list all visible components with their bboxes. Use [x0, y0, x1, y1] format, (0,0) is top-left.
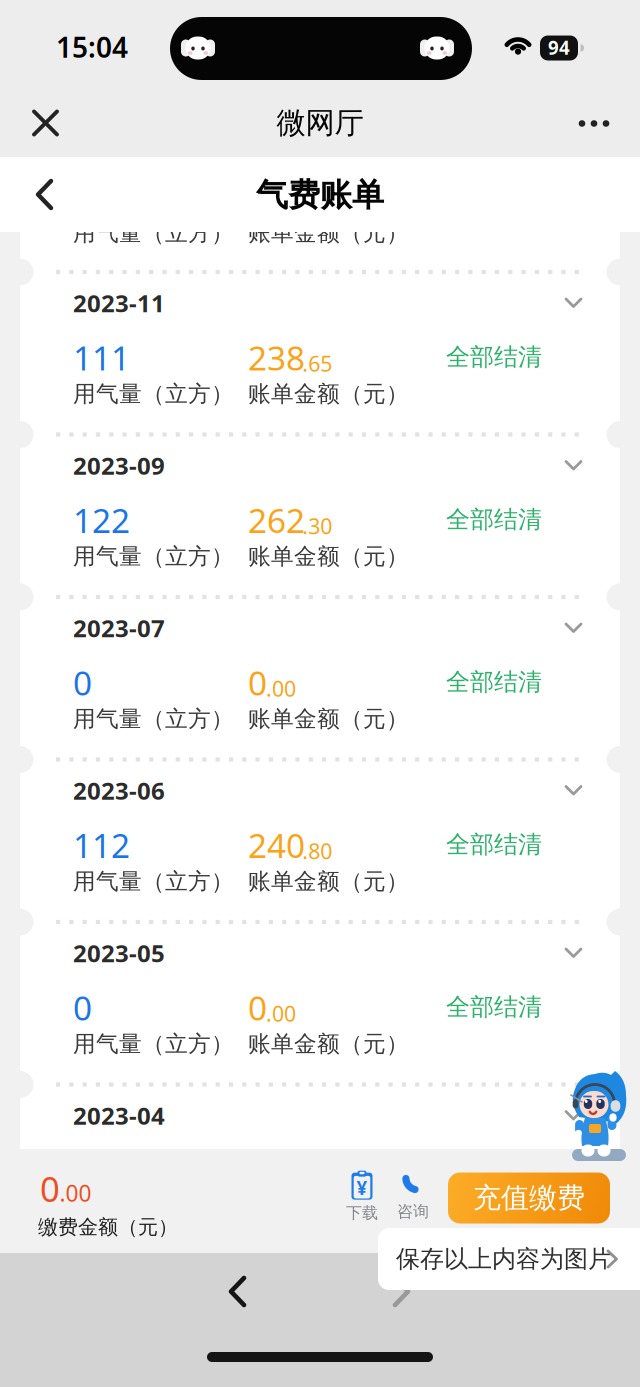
staticText: 2023-06 — [73, 775, 165, 806]
button[interactable]: 展开 2023-05 — [0, 927, 640, 979]
staticText: 112 — [73, 823, 130, 867]
staticText: 0 — [248, 985, 267, 1030]
staticText: 用气量（立方） — [73, 543, 234, 570]
staticText: 0 — [40, 1165, 60, 1211]
staticText: 2023-09 — [73, 450, 165, 481]
staticText: 账单金额（元） — [248, 1193, 409, 1220]
button[interactable]: Back — [12, 161, 78, 229]
button[interactable]: Close — [11, 101, 79, 145]
staticText: 全部结清 — [446, 992, 542, 1022]
staticText: 111 — [73, 335, 130, 380]
staticText: 全部结清 — [446, 667, 542, 697]
button[interactable]: 展开 2023-06 — [0, 764, 640, 816]
staticText: 262 — [248, 498, 305, 542]
button[interactable]: Forward — [375, 1258, 429, 1326]
staticText: 2023-07 — [73, 612, 165, 644]
staticText: 0 — [248, 660, 267, 705]
button[interactable]: 展开 2023-04 — [0, 1089, 640, 1141]
staticText: 240 — [248, 823, 305, 867]
staticText: 238 — [248, 335, 305, 380]
staticText: 账单金额（元） — [248, 219, 409, 247]
staticText: 全部结清 — [446, 1155, 542, 1184]
staticText: 微网厅 — [276, 105, 363, 141]
staticText: 用气量（立方） — [73, 1193, 234, 1220]
staticText: 15:04 — [56, 28, 128, 66]
staticText: .30 — [302, 512, 332, 540]
staticText: 全部结清 — [446, 505, 542, 534]
staticText: ¥ — [356, 1175, 367, 1200]
staticText: 用气量（立方） — [73, 1030, 234, 1058]
staticText: 账单金额（元） — [248, 1030, 409, 1058]
staticText: .00 — [266, 674, 296, 703]
staticText: 保存以上内容为图片 — [396, 1244, 612, 1274]
staticText: 2023-11 — [73, 287, 165, 319]
staticText: .00 — [266, 999, 296, 1028]
staticText: 用气量（立方） — [73, 219, 234, 247]
staticText: 全部结清 — [446, 830, 542, 859]
staticText: 账单金额（元） — [248, 543, 409, 570]
button[interactable]: 展开 2023-07 — [0, 602, 640, 654]
staticText: 咨询 — [397, 1202, 429, 1221]
staticText: 账单金额（元） — [248, 380, 409, 408]
button[interactable]: Back — [211, 1258, 265, 1326]
staticText: 下载 — [346, 1203, 378, 1223]
staticText: .65 — [302, 349, 332, 378]
staticText: 122 — [73, 498, 130, 542]
staticText: 112 — [73, 1148, 130, 1192]
staticText: 2023-05 — [73, 937, 165, 969]
staticText: 账单金额（元） — [248, 868, 409, 895]
button[interactable]: More — [562, 101, 626, 145]
staticText: 0 — [73, 660, 92, 705]
staticText: 气费账单 — [256, 175, 384, 215]
staticText: .80 — [302, 837, 332, 865]
staticText: 用气量（立方） — [73, 705, 234, 733]
button[interactable]: 充值缴费 — [448, 1172, 610, 1223]
button[interactable]: 下载 — [338, 1169, 386, 1225]
staticText: 账单金额（元） — [248, 705, 409, 733]
staticText: 充值缴费 — [473, 1181, 585, 1215]
button[interactable]: 咨询 — [389, 1169, 437, 1225]
staticText: 缴费金额（元） — [38, 1215, 178, 1239]
staticText: 用气量（立方） — [73, 380, 234, 408]
button[interactable]: 展开 2023-09 — [0, 439, 640, 491]
button[interactable]: 展开 2023-11 — [0, 277, 640, 329]
staticText: 94 — [548, 35, 570, 60]
staticText: 2023-04 — [73, 1100, 165, 1131]
staticText: 全部结清 — [446, 342, 542, 372]
staticText: 用气量（立方） — [73, 868, 234, 895]
staticText: .00 — [59, 1178, 91, 1208]
staticText: 0 — [73, 985, 92, 1030]
button[interactable]: 保存以上内容为图片 — [378, 1228, 640, 1290]
